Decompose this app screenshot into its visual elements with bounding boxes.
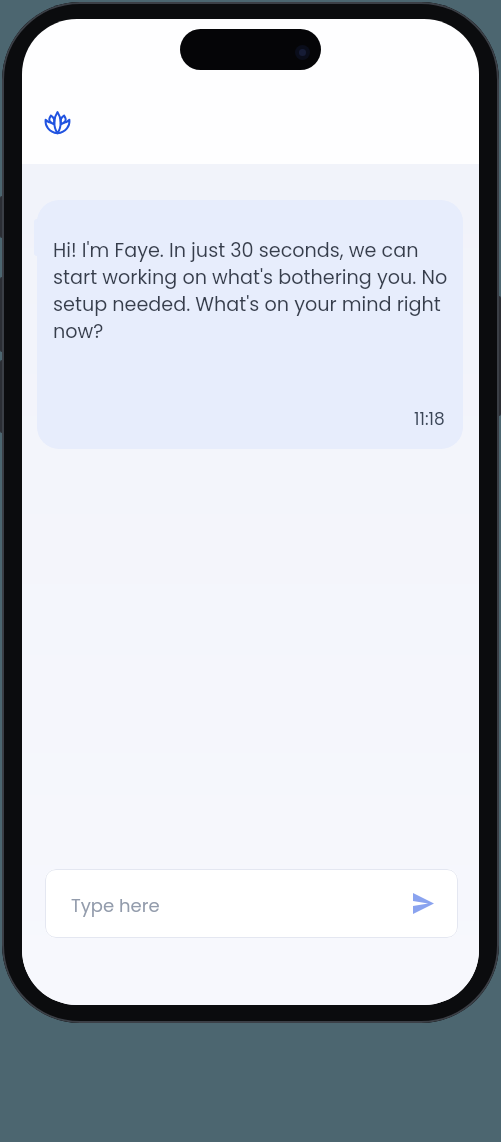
staticText: setup needed. What's on your mind right	[53, 291, 441, 318]
staticText: start working on what's bothering you. N…	[53, 264, 448, 291]
staticText: Hi! I'm Faye. In just 30 seconds, we can	[53, 237, 419, 264]
staticText: Type here	[71, 893, 160, 918]
staticText: now?	[53, 318, 104, 345]
button[interactable]	[413, 893, 434, 914]
staticText: 11:18	[414, 407, 445, 431]
button[interactable]: Type here	[45, 869, 458, 938]
